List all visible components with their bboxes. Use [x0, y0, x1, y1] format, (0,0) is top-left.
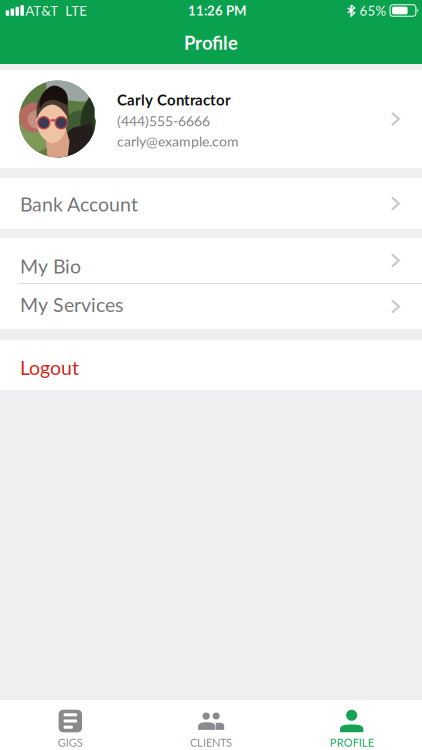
staticText: Bank Account	[20, 192, 138, 216]
staticText: GIGS	[58, 736, 83, 749]
staticText: My Bio	[20, 254, 81, 278]
button[interactable]: My Bio	[0, 238, 422, 283]
button[interactable]: Logout	[0, 340, 422, 390]
button[interactable]: GIGS	[0, 699, 141, 750]
staticText: 65%	[360, 2, 387, 19]
staticText: Carly Contractor	[117, 91, 231, 109]
button[interactable]: PROFILE	[281, 699, 422, 750]
button[interactable]: Carly Contractor	[0, 70, 422, 168]
staticText: AT&T	[25, 2, 58, 19]
staticText: (444)555-6666	[117, 112, 210, 129]
staticText: Profile	[184, 31, 238, 54]
staticText: 11:26 PM	[188, 3, 246, 18]
staticText: CLIENTS	[190, 736, 232, 749]
button[interactable]: CLIENTS	[141, 699, 281, 750]
staticText: carly@example.com	[117, 133, 239, 149]
button[interactable]: Bank Account	[0, 178, 422, 229]
staticText: PROFILE	[330, 736, 374, 749]
staticText: Logout	[20, 356, 79, 379]
button[interactable]: My Services	[0, 284, 422, 329]
staticText: LTE	[65, 2, 87, 19]
staticText: My Services	[20, 293, 123, 316]
